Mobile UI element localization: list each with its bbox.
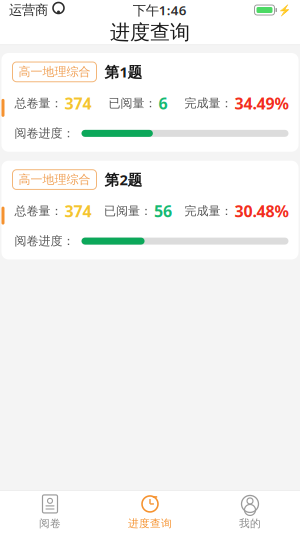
staticText: 高一地理综合 <box>18 172 90 187</box>
staticText: 第2题 <box>104 170 142 189</box>
staticText: 完成量： <box>184 96 232 111</box>
staticText: 374 <box>64 200 91 222</box>
staticText: 下午1:46 <box>133 1 187 19</box>
staticText: 进度查询 <box>128 517 172 530</box>
staticText: 第1题 <box>104 62 142 82</box>
staticText: ⚡ <box>278 4 291 16</box>
button[interactable]: 进度查询 <box>100 491 200 533</box>
staticText: 完成量： <box>184 204 232 218</box>
staticText: 6 <box>158 93 167 114</box>
staticText: 运营商 <box>9 2 48 18</box>
staticText: 已阅量： <box>108 96 156 111</box>
button[interactable]: 我的 <box>200 491 300 533</box>
staticText: 阅卷进度： <box>14 234 74 248</box>
staticText: 高一地理综合 <box>18 64 90 79</box>
staticText: 我的 <box>239 517 261 530</box>
button[interactable]: 阅卷 <box>0 491 100 533</box>
button[interactable]: 高一地理综合 <box>1 161 298 259</box>
staticText: 30.48% <box>234 200 288 222</box>
button[interactable]: 高一地理综合 <box>1 53 298 152</box>
staticText: 374 <box>64 93 91 114</box>
staticText: 34.49% <box>234 93 288 114</box>
staticText: 总卷量： <box>14 204 62 218</box>
staticText: 56 <box>154 200 172 222</box>
staticText: 阅卷 <box>39 517 61 530</box>
staticText: 总卷量： <box>14 96 62 111</box>
staticText: 进度查询 <box>110 20 190 45</box>
staticText: 阅卷进度： <box>14 126 74 141</box>
staticText: 已阅量： <box>104 204 152 218</box>
